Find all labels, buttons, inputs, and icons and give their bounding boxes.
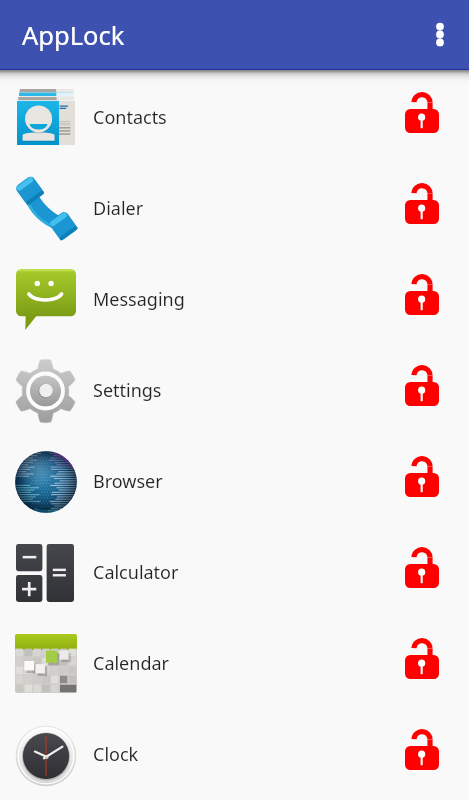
staticText: Settings — [93, 378, 162, 403]
staticText: Messaging — [93, 287, 185, 312]
button[interactable]: Unlocked: tap to lock Settings — [393, 362, 451, 420]
button[interactable]: Messaging — [0, 254, 469, 345]
button[interactable]: Unlocked: tap to lock Clock — [393, 726, 451, 784]
staticText: Browser — [93, 469, 163, 494]
button[interactable]: Calculator — [0, 527, 469, 618]
button[interactable]: Unlocked: tap to lock Messaging — [393, 271, 451, 329]
button[interactable]: Settings — [0, 345, 469, 436]
button[interactable]: Unlocked: tap to lock Dialer — [393, 180, 451, 238]
button[interactable]: Unlocked: tap to lock Browser — [393, 453, 451, 511]
button[interactable]: Clock — [0, 709, 469, 800]
staticText: Clock — [93, 742, 139, 767]
button[interactable]: More options — [419, 14, 461, 56]
staticText: Calendar — [93, 651, 169, 676]
staticText: Calculator — [93, 560, 179, 585]
button[interactable]: Contacts — [0, 72, 469, 163]
staticText: Contacts — [93, 105, 167, 130]
button[interactable]: Unlocked: tap to lock Calendar — [393, 635, 451, 693]
button[interactable]: Browser — [0, 436, 469, 527]
staticText: AppLock — [22, 18, 125, 53]
button[interactable]: Unlocked: tap to lock Calculator — [393, 544, 451, 602]
button[interactable]: Dialer — [0, 163, 469, 254]
button[interactable]: Calendar — [0, 618, 469, 709]
button[interactable]: Unlocked: tap to lock Contacts — [393, 89, 451, 147]
staticText: Dialer — [93, 196, 144, 221]
